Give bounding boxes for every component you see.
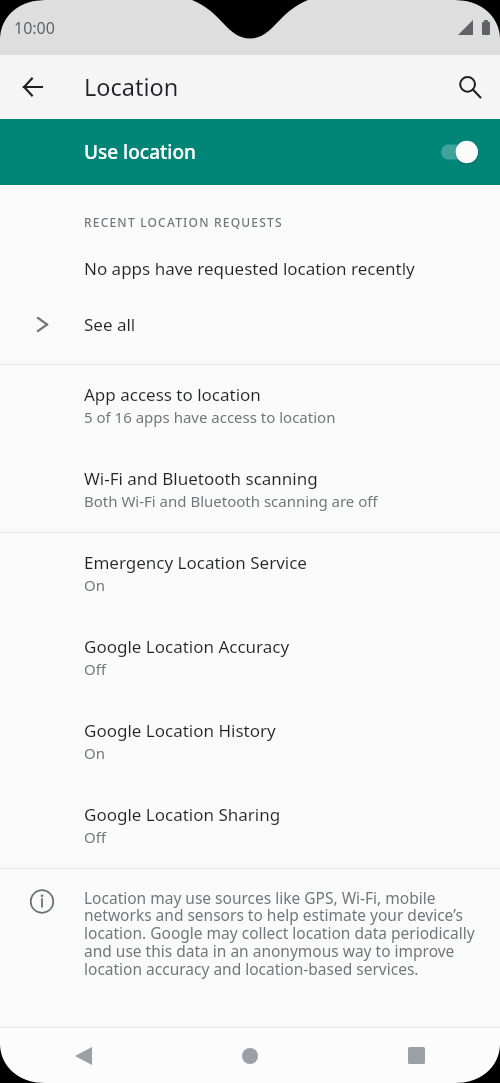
button[interactable]: Emergency Location Service xyxy=(0,533,500,617)
button[interactable]: Search xyxy=(446,63,494,111)
staticText: Use location xyxy=(84,139,196,165)
staticText: Location may use sources like GPS, Wi-Fi… xyxy=(84,887,478,980)
staticText: Google Location Sharing xyxy=(84,803,281,826)
button[interactable]: Recent apps xyxy=(333,1028,500,1083)
staticText: On xyxy=(84,575,105,595)
button[interactable]: Google Location History xyxy=(0,701,500,785)
staticText: Google Location Accuracy xyxy=(84,635,290,658)
staticText: Off xyxy=(84,827,107,847)
staticText: 5 of 16 apps have access to location xyxy=(84,407,336,427)
staticText: No apps have requested location recently xyxy=(84,257,415,280)
button[interactable]: App access to location xyxy=(0,365,500,449)
button[interactable]: Google Location Sharing xyxy=(0,785,500,868)
staticText: Wi-Fi and Bluetooth scanning xyxy=(84,467,318,490)
button[interactable]: See all xyxy=(0,311,500,337)
staticText: On xyxy=(84,743,105,763)
button[interactable]: Back xyxy=(8,63,56,111)
staticText: RECENT LOCATION REQUESTS xyxy=(84,214,283,230)
staticText: Google Location History xyxy=(84,719,276,742)
button[interactable]: Google Location Accuracy xyxy=(0,617,500,701)
button[interactable]: Back xyxy=(0,1028,166,1083)
staticText: App access to location xyxy=(84,383,261,406)
button[interactable]: Wi-Fi and Bluetooth scanning xyxy=(0,449,500,532)
staticText: See all xyxy=(84,313,136,336)
staticText: Location xyxy=(84,71,179,103)
staticText: Off xyxy=(84,659,107,679)
staticText: Both Wi-Fi and Bluetooth scanning are of… xyxy=(84,491,378,511)
staticText: 10:00 xyxy=(14,17,55,39)
staticText: Emergency Location Service xyxy=(84,551,307,574)
button[interactable]: Use location xyxy=(0,119,500,185)
button[interactable]: Home xyxy=(166,1028,333,1083)
